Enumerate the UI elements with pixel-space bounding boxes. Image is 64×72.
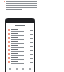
button[interactable] xyxy=(6,23,34,28)
button[interactable] xyxy=(6,48,34,52)
button[interactable]: Tab xyxy=(20,66,26,72)
button[interactable]: Tab xyxy=(7,66,13,72)
button[interactable] xyxy=(6,44,34,48)
button[interactable] xyxy=(6,60,34,64)
button[interactable] xyxy=(6,40,34,44)
button[interactable] xyxy=(6,56,34,60)
button[interactable]: Tab xyxy=(27,66,33,72)
button[interactable] xyxy=(6,36,34,40)
button[interactable] xyxy=(6,52,34,56)
button[interactable] xyxy=(6,28,34,32)
button[interactable]: Tab xyxy=(14,66,20,72)
button[interactable] xyxy=(6,32,34,36)
